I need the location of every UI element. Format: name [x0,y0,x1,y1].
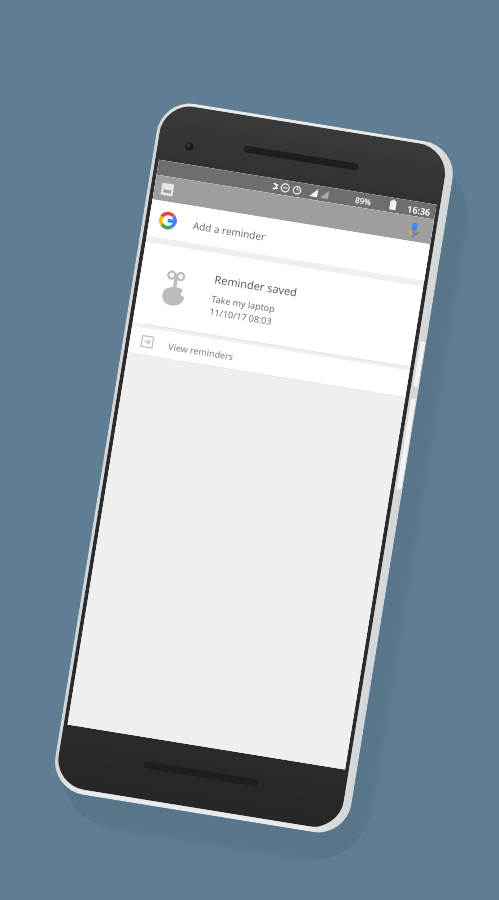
button[interactable]: Reminder saved [133,242,423,368]
button[interactable]: Add a reminder [147,199,430,281]
staticText: 11/10/17 08:03 [209,305,273,327]
staticText: Add a reminder [192,218,267,244]
button[interactable]: App [160,183,174,196]
staticText: View reminders [167,340,235,362]
staticText: 89% [354,194,372,207]
staticText: Reminder saved [213,271,299,300]
button[interactable]: View reminders [128,326,410,397]
staticText: Take my laptop [211,292,277,314]
staticText: 16:36 [407,202,432,218]
button[interactable]: Voice search [405,218,424,241]
